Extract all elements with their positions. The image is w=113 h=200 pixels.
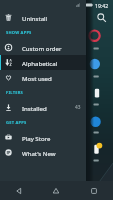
button[interactable]: Most used [0, 70, 86, 85]
staticText: 19:42 [95, 2, 109, 9]
staticText: Most used [22, 74, 52, 82]
staticText: GET APPS [6, 120, 27, 126]
staticText: Uninstall [22, 14, 48, 22]
button[interactable]: Back [0, 181, 37, 200]
staticText: Alphabetical [22, 59, 58, 67]
staticText: Play Store [22, 134, 51, 142]
staticText: SHOW APPS [6, 30, 32, 36]
button[interactable]: Recents [75, 181, 113, 200]
button[interactable]: What's New [0, 145, 86, 160]
button[interactable]: Search [95, 11, 107, 23]
button[interactable]: Alphabetical [0, 55, 86, 70]
button[interactable]: Installed [0, 100, 86, 115]
staticText: 43 [75, 104, 81, 111]
button[interactable]: Uninstall [0, 10, 86, 25]
button[interactable]: Home [37, 181, 75, 200]
staticText: Custom order [22, 44, 62, 52]
staticText: FILTERS [6, 90, 24, 96]
staticText: What's New [22, 149, 56, 157]
staticText: Installed [22, 104, 47, 112]
button[interactable]: Play Store [0, 130, 86, 145]
button[interactable]: Custom order [0, 40, 86, 55]
